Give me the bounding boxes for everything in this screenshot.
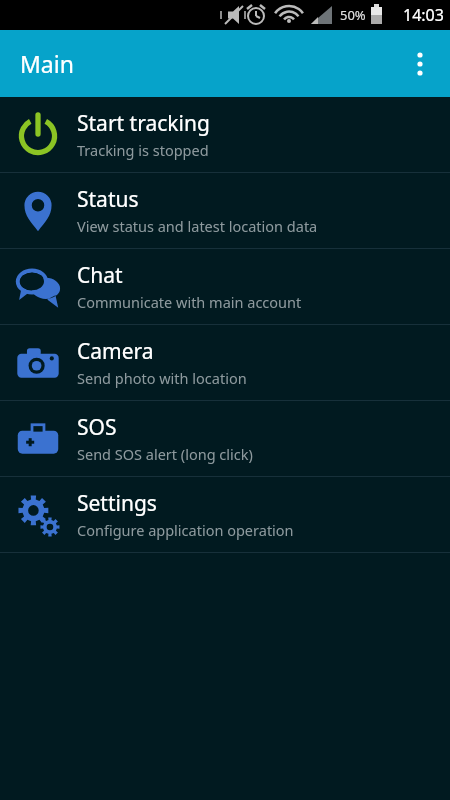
staticText: 50% [340,6,366,24]
button[interactable]: Settings [0,477,450,552]
staticText: Send photo with location [77,368,247,388]
staticText: 14:03 [403,4,444,26]
staticText: Communicate with main account [77,292,302,312]
staticText: Configure application operation [77,520,294,540]
button[interactable]: SOS [0,401,450,476]
staticText: SOS [77,413,117,442]
staticText: Start tracking [77,109,210,138]
staticText: Status [77,185,139,214]
staticText: Chat [77,261,123,290]
staticText: Settings [77,489,157,518]
button[interactable]: Start tracking [0,97,450,172]
button[interactable]: More options [398,42,442,86]
staticText: Tracking is stopped [77,140,209,160]
button[interactable]: Camera [0,325,450,400]
staticText: Main [20,48,74,79]
button[interactable]: Status [0,173,450,248]
button[interactable]: Chat [0,249,450,324]
staticText: Send SOS alert (long click) [77,444,253,464]
staticText: View status and latest location data [77,216,318,236]
staticText: Camera [77,337,154,366]
